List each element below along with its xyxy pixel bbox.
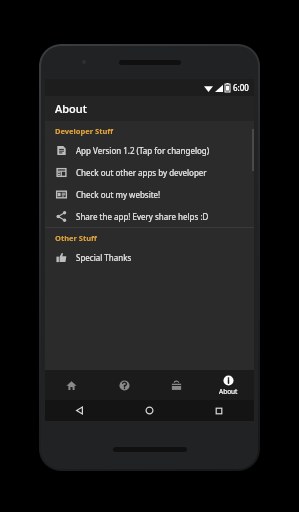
button[interactable]: About: [202, 370, 254, 400]
button[interactable]: Special Thanks: [45, 246, 254, 268]
staticText: Share the app! Every share helps :D: [76, 211, 209, 222]
staticText: Check out my website!: [76, 189, 161, 200]
staticText: Other Stuff: [55, 233, 97, 243]
button[interactable]: Check out my website!: [45, 183, 254, 205]
staticText: Check out other apps by developer: [76, 167, 207, 178]
button[interactable]: Check out other apps by developer: [45, 161, 254, 183]
button[interactable]: Share the app! Every share helps :D: [45, 205, 254, 227]
staticText: About: [55, 101, 87, 116]
button[interactable]: Store: [150, 370, 202, 400]
staticText: Special Thanks: [76, 252, 132, 263]
staticText: Developer Stuff: [55, 126, 114, 136]
staticText: App Version 1.2 (Tap for changelog): [76, 145, 210, 156]
button[interactable]: App Version 1.2 (Tap for changelog): [45, 139, 254, 161]
button[interactable]: Home: [114, 400, 184, 421]
button[interactable]: Back: [45, 400, 114, 421]
staticText: About: [219, 387, 238, 396]
staticText: 6:00: [233, 82, 249, 93]
button[interactable]: Recents: [184, 400, 254, 421]
button[interactable]: Help: [98, 370, 150, 400]
button[interactable]: Home: [45, 370, 98, 400]
